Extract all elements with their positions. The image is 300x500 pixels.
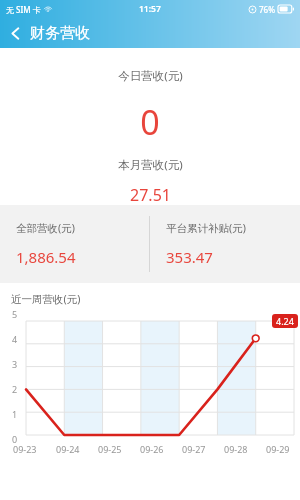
staticText: 近一周营收(元) (11, 292, 81, 306)
staticText: 5 (12, 308, 18, 320)
staticText: 4 (12, 333, 18, 345)
button[interactable]: 全部营收(元) (0, 205, 149, 283)
staticText: 全部营收(元) (16, 221, 75, 235)
staticText: 353.47 (166, 247, 213, 267)
staticText: 无 SIM 卡 (6, 4, 41, 15)
staticText: 09-26 (140, 443, 164, 455)
staticText: 09-23 (13, 443, 37, 455)
staticText: 本月营收(元) (118, 157, 183, 173)
staticText: 2 (12, 383, 18, 395)
staticText: 3 (12, 358, 18, 370)
button[interactable]: Back (0, 18, 30, 48)
staticText: 0 (140, 99, 160, 145)
staticText: 09-28 (224, 443, 248, 455)
staticText: 09-27 (182, 443, 206, 455)
staticText: 09-24 (56, 443, 80, 455)
staticText: 09-25 (98, 443, 122, 455)
staticText: 财务营收 (30, 24, 90, 43)
button[interactable]: 平台累计补贴(元) (150, 205, 300, 283)
staticText: 1,886.54 (16, 247, 76, 267)
staticText: 11:57 (139, 3, 161, 15)
staticText: 76% (259, 4, 275, 15)
staticText: 0 (12, 433, 18, 445)
staticText: 27.51 (130, 184, 171, 205)
staticText: 4.24 (276, 315, 294, 327)
staticText: 09-29 (266, 443, 290, 455)
staticText: 今日营收(元) (118, 68, 183, 84)
staticText: 平台累计补贴(元) (166, 221, 246, 235)
staticText: 1 (12, 408, 18, 420)
